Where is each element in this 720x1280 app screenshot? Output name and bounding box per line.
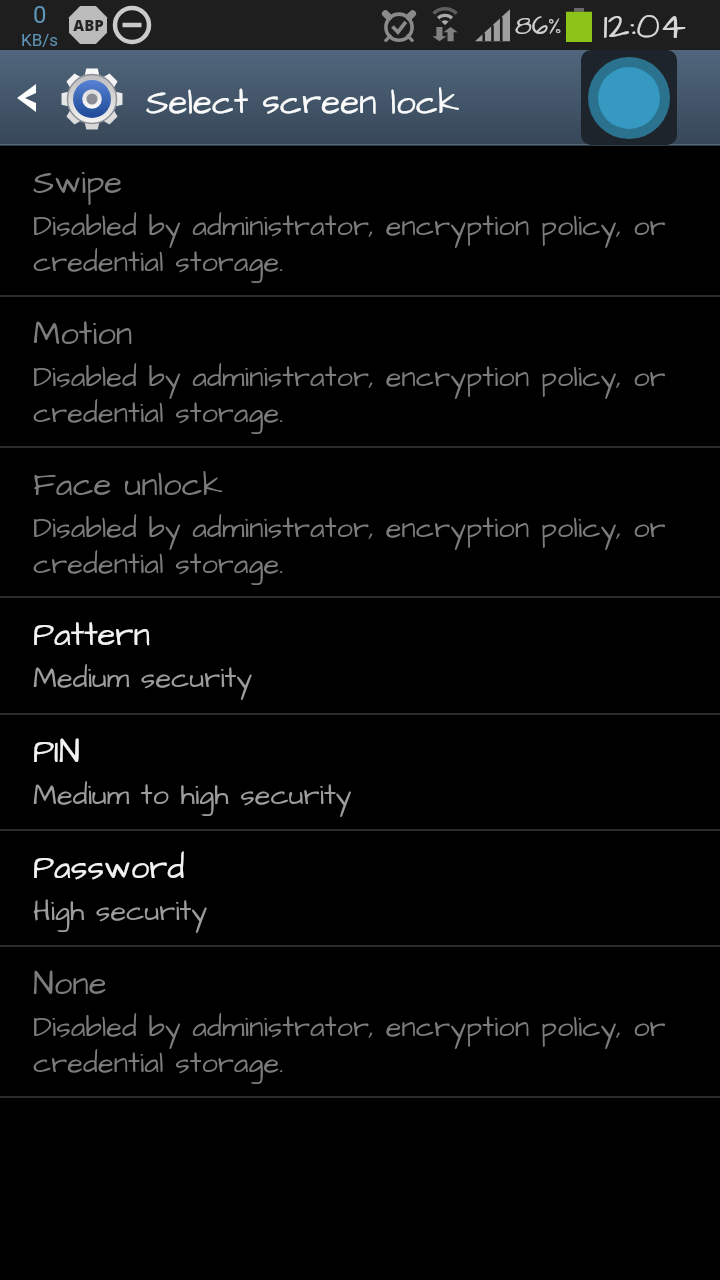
staticText: High security bbox=[33, 891, 208, 931]
button[interactable]: PIN bbox=[0, 715, 720, 831]
staticText: Disabled by administrator, encryption po… bbox=[33, 508, 694, 584]
staticText: Disabled by administrator, encryption po… bbox=[33, 1007, 694, 1083]
other: Back bbox=[16, 80, 42, 116]
staticText: 0 bbox=[33, 1, 47, 29]
staticText: PIN bbox=[33, 729, 80, 775]
button[interactable]: Swipe bbox=[0, 146, 720, 297]
button[interactable]: Password bbox=[0, 831, 720, 947]
button[interactable]: Motion bbox=[0, 297, 720, 448]
button[interactable]: Face unlock bbox=[0, 448, 720, 598]
staticText: Disabled by administrator, encryption po… bbox=[33, 357, 694, 433]
staticText: KB/s bbox=[21, 30, 59, 50]
staticText: Password bbox=[33, 845, 185, 891]
button[interactable]: Back bbox=[0, 50, 720, 146]
staticText: Swipe bbox=[33, 160, 123, 206]
staticText: 86% bbox=[515, 8, 562, 44]
staticText: Select screen lock bbox=[146, 78, 460, 127]
staticText: None bbox=[33, 961, 107, 1007]
staticText: Disabled by administrator, encryption po… bbox=[33, 206, 694, 282]
button[interactable]: Assistive touch bbox=[581, 50, 677, 145]
staticText: Motion bbox=[33, 311, 133, 357]
staticText: Pattern bbox=[33, 612, 151, 658]
button[interactable]: None bbox=[0, 947, 720, 1098]
staticText: 12:04 bbox=[603, 1, 686, 51]
staticText: Medium security bbox=[33, 658, 253, 698]
staticText: ABP bbox=[73, 15, 104, 35]
button[interactable]: Pattern bbox=[0, 598, 720, 715]
staticText: Medium to high security bbox=[33, 775, 352, 815]
staticText: Face unlock bbox=[33, 462, 223, 508]
